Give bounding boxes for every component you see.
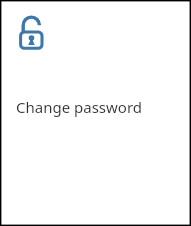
other: Change password [16,14,48,52]
button[interactable]: Change password [0,0,191,226]
staticText: Change password [16,97,143,117]
